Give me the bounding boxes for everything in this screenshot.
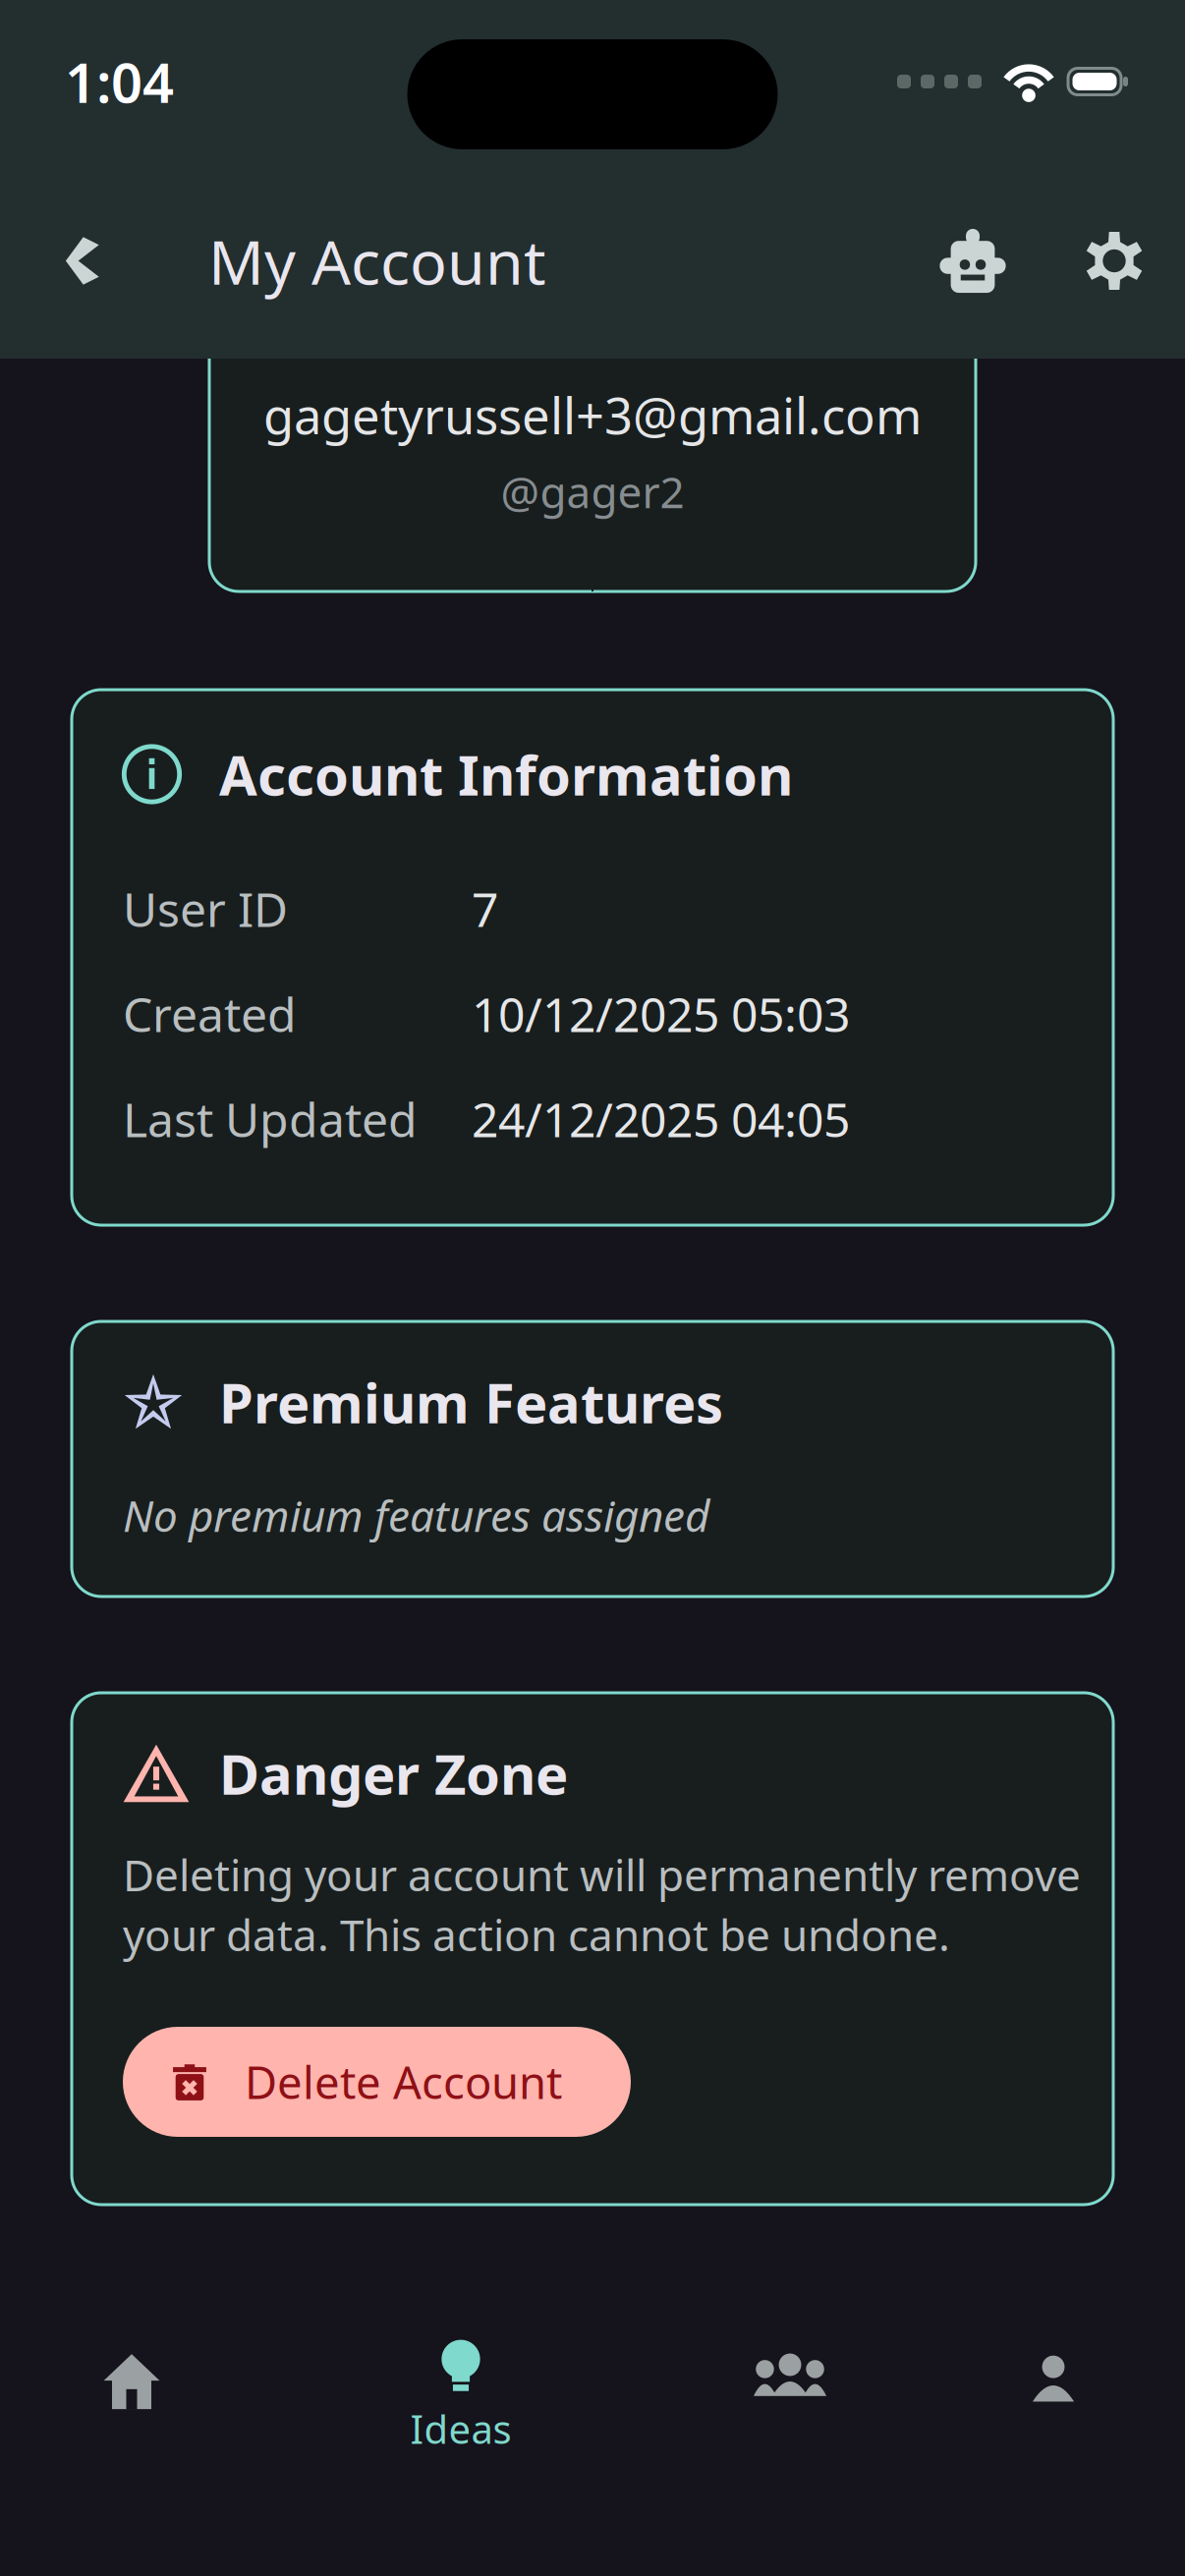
staticText: @gager2 xyxy=(501,463,684,520)
staticText: gagetyrussell+3@gmail.com xyxy=(263,382,922,448)
staticText: your data. This action cannot be undone. xyxy=(123,1906,950,1963)
button[interactable]: Back xyxy=(29,212,130,310)
button[interactable]: Delete Account xyxy=(123,2027,631,2137)
staticText: Deleting your account will permanently r… xyxy=(123,1846,1081,1903)
staticText: 10/12/2025 05:03 xyxy=(472,983,850,1045)
button[interactable]: Profile xyxy=(922,2334,1185,2576)
staticText: User ID xyxy=(123,877,288,940)
staticText: Ideas xyxy=(410,2402,511,2455)
button[interactable]: Assistant xyxy=(902,212,1044,310)
button[interactable]: Community xyxy=(658,2334,922,2576)
staticText: 7 xyxy=(472,877,498,940)
staticText: Danger Zone xyxy=(219,1737,568,1810)
button[interactable]: Home xyxy=(0,2334,263,2576)
staticText: Last Updated xyxy=(123,1088,418,1150)
staticText: 1:04 xyxy=(65,45,174,118)
button[interactable]: Settings xyxy=(1044,212,1185,310)
staticText: Delete Account xyxy=(245,2052,562,2111)
staticText: Premium Features xyxy=(219,1365,723,1439)
staticText: Account Information xyxy=(219,738,793,811)
button[interactable]: Ideas xyxy=(263,2334,658,2576)
staticText: My Account xyxy=(208,220,546,302)
staticText: No premium features assigned xyxy=(123,1486,709,1544)
staticText: Created xyxy=(123,983,297,1045)
staticText: 24/12/2025 04:05 xyxy=(472,1088,850,1150)
